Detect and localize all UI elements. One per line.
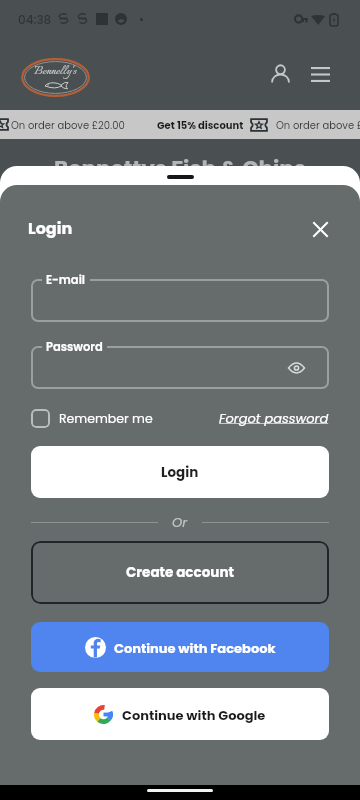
staticText: 04:38 xyxy=(18,11,52,28)
button[interactable]: Forgot password xyxy=(219,409,329,427)
staticText: Create account xyxy=(126,563,234,582)
staticText: Continue with Google xyxy=(122,706,266,724)
button[interactable]: Continue with Google xyxy=(31,688,329,740)
staticText: Login xyxy=(161,463,199,482)
staticText: Bennettys Fish & Chips xyxy=(0,153,360,183)
staticText: On order above £20 xyxy=(276,118,360,132)
staticText: On order above £20.00 xyxy=(11,118,125,132)
button[interactable]: Remember me xyxy=(31,409,153,428)
staticText: Or xyxy=(172,513,188,531)
staticText: Continue with Facebook xyxy=(114,639,276,657)
staticText: Login xyxy=(28,217,73,239)
staticText: Get 15% discount xyxy=(157,118,244,132)
staticText: Password xyxy=(46,339,103,355)
button[interactable]: Create account xyxy=(31,541,329,604)
button[interactable]: Menu xyxy=(306,60,334,88)
button[interactable]: Account xyxy=(266,60,294,88)
button[interactable]: Continue with Facebook xyxy=(31,622,329,672)
button[interactable]: Show password xyxy=(282,354,310,382)
staticText: Forgot password xyxy=(219,409,329,427)
staticText: Bennelly's xyxy=(34,62,77,81)
button[interactable]: Close xyxy=(306,215,334,243)
staticText: E-mail xyxy=(46,272,86,288)
staticText: Remember me xyxy=(59,410,153,427)
button[interactable]: Login xyxy=(31,446,329,498)
